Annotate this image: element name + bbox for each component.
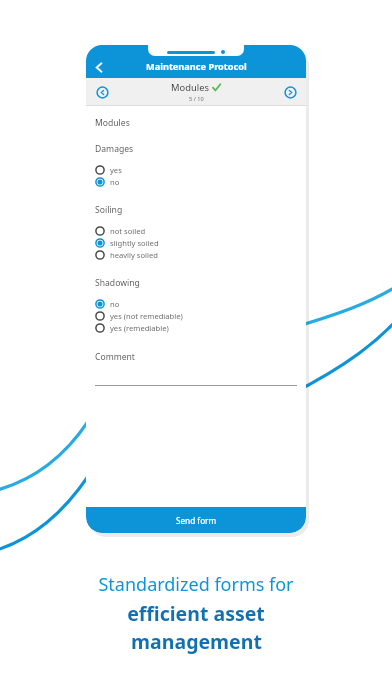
button[interactable]: Previous module: [92, 82, 112, 102]
staticText: Shadowing: [95, 277, 140, 289]
staticText: Send form: [176, 515, 217, 526]
staticText: Comment: [95, 351, 135, 363]
staticText: Standardized forms for: [98, 572, 294, 597]
button[interactable]: yes (not remediable): [95, 310, 297, 322]
staticText: no: [110, 177, 120, 187]
staticText: Damages: [95, 143, 134, 155]
button[interactable]: Send form: [86, 507, 306, 533]
button[interactable]: no: [95, 176, 297, 188]
staticText: not soiled: [110, 226, 146, 236]
staticText: Modules: [95, 117, 130, 129]
staticText: yes (remediable): [110, 323, 169, 333]
staticText: slightly soiled: [110, 238, 159, 248]
button[interactable]: yes: [95, 164, 297, 176]
button[interactable]: slightly soiled: [95, 237, 297, 249]
button[interactable]: Next module: [280, 82, 300, 102]
staticText: 5 / 10: [189, 95, 204, 103]
button[interactable]: yes (remediable): [95, 322, 297, 334]
staticText: Soiling: [95, 204, 123, 216]
staticText: efficient asset: [127, 600, 265, 627]
staticText: yes (not remediable): [110, 311, 183, 321]
button[interactable]: Back: [90, 58, 108, 76]
staticText: heavily soiled: [110, 250, 158, 260]
button[interactable]: heavily soiled: [95, 249, 297, 261]
staticText: yes: [110, 165, 122, 175]
button[interactable]: not soiled: [95, 225, 297, 237]
staticText: management: [131, 628, 262, 655]
staticText: no: [110, 299, 120, 309]
button[interactable]: no: [95, 298, 297, 310]
staticText: Modules: [171, 81, 209, 94]
staticText: Maintenance Protocol: [146, 60, 247, 73]
